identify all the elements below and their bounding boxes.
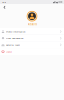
- staticText: User notification: [6, 37, 23, 40]
- button[interactable]: Logout: [0, 48, 64, 55]
- button[interactable]: Back: [2, 4, 7, 11]
- button[interactable]: Profile information: [0, 28, 64, 35]
- button[interactable]: User notification: [0, 35, 64, 41]
- button[interactable]: Referral team: [0, 42, 64, 48]
- staticText: 9:41: [2, 0, 6, 4]
- button[interactable]: Profile photo: [27, 11, 37, 21]
- staticText: Profile information: [6, 30, 25, 33]
- staticText: Logout: [6, 50, 12, 53]
- staticText: Adaora: [27, 22, 36, 26]
- staticText: Referral team: [6, 43, 20, 46]
